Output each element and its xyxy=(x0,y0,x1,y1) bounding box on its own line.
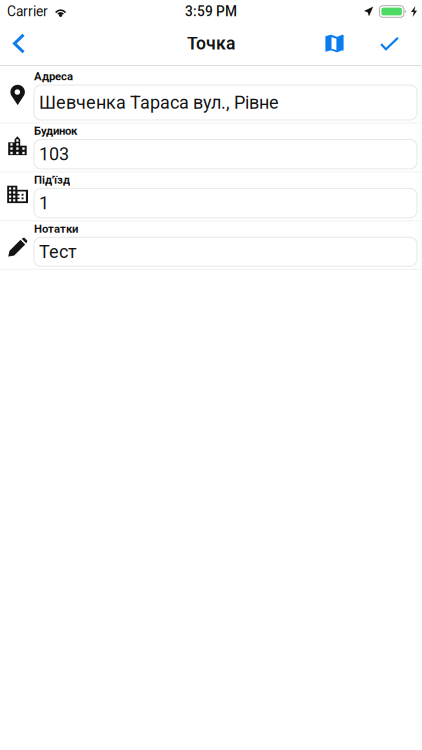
staticText: Тест xyxy=(39,241,77,262)
staticText: Carrier xyxy=(7,3,48,20)
button[interactable]: Під'їзд xyxy=(0,174,422,218)
staticText: Нотатки xyxy=(34,222,78,235)
button[interactable]: Back xyxy=(0,22,38,65)
staticText: 103 xyxy=(39,144,69,165)
staticText: Під'їзд xyxy=(34,173,70,187)
button[interactable]: Нотатки xyxy=(0,223,422,266)
staticText: 3:59 PM xyxy=(185,3,237,20)
button[interactable]: Будинок xyxy=(0,125,422,169)
button[interactable]: Save xyxy=(367,22,411,65)
staticText: Адреса xyxy=(34,70,73,83)
button[interactable]: Адреса xyxy=(0,71,422,120)
staticText: 1 xyxy=(39,193,49,214)
staticText: Будинок xyxy=(34,124,77,138)
staticText: Шевченка Тараса вул., Рівне xyxy=(39,92,279,113)
button[interactable]: Show on map xyxy=(323,22,367,65)
staticText: Точка xyxy=(187,33,235,54)
